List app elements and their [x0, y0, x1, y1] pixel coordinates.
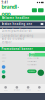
staticText: Section heading two — [2, 28, 32, 32]
button[interactable]: Browse — [11, 84, 22, 93]
staticText: Fourth line item — [27, 64, 36, 66]
button[interactable]: Chat — [38, 69, 44, 76]
staticText: Lorem ipsum dolor sit — [2, 29, 32, 33]
staticText: Download — [28, 70, 35, 72]
staticText: More — [37, 89, 41, 91]
button[interactable]: Home — [0, 84, 11, 93]
staticText: brandlogo — [1, 3, 19, 17]
button[interactable]: WhatsApp — [2, 75, 5, 79]
button[interactable]: Offer — [29, 53, 45, 56]
staticText: Home — [4, 89, 8, 91]
staticText: Offer — [30, 51, 35, 58]
staticText: Information line — [27, 54, 36, 56]
button[interactable]: Twitter — [2, 70, 5, 74]
staticText: Links — [2, 54, 6, 56]
staticText: Third line of text — [27, 61, 36, 62]
button[interactable]: More — [34, 84, 45, 93]
staticText: Welcome headline — [2, 16, 30, 20]
button[interactable]: Saved — [22, 84, 34, 93]
staticText: 9:41 — [1, 1, 8, 4]
button[interactable]: Consectetur adipiscing — [0, 34, 45, 38]
button[interactable]: Search — [32, 8, 37, 12]
button[interactable]: Facebook — [2, 65, 5, 69]
staticText: Help — [2, 60, 5, 62]
staticText: Consectetur adipiscing — [2, 34, 34, 37]
button[interactable]: Section heading one — [0, 21, 45, 26]
staticText: Another short line — [27, 57, 39, 59]
button[interactable]: Section heading two — [0, 27, 45, 32]
button[interactable]: Sed do eiusmod tempor — [0, 38, 45, 42]
staticText: Section heading one — [2, 22, 33, 26]
button[interactable]: Download — [27, 69, 37, 73]
button[interactable]: Menu — [38, 8, 44, 12]
staticText: Promotional banner — [2, 47, 33, 51]
button[interactable]: Lorem ipsum dolor sit — [0, 29, 45, 33]
staticText: Sed do eiusmod tempor — [2, 37, 25, 44]
staticText: Browse — [14, 89, 20, 91]
